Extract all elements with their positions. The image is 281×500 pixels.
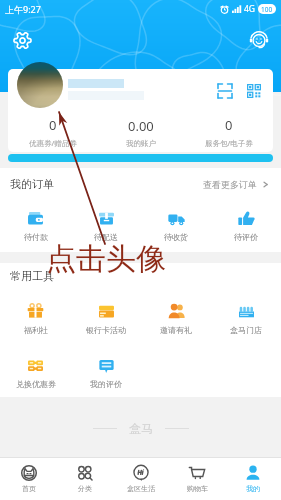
staticText: 0.00 — [128, 117, 154, 135]
staticText: 我的订单 — [10, 177, 54, 191]
staticText: 盒马门店 — [230, 325, 262, 335]
staticText: 盒区生活 — [127, 484, 155, 493]
button[interactable]: 盒马门店 — [211, 289, 281, 349]
staticText: 待配送 — [94, 232, 118, 242]
staticText: 待评价 — [234, 232, 258, 242]
staticText: 我的评价 — [90, 379, 122, 389]
button[interactable]: 待评价 — [211, 200, 281, 252]
staticText: 购物车 — [187, 484, 208, 493]
button[interactable]: 0 — [8, 112, 97, 152]
staticText: 我的账户 — [126, 139, 156, 148]
staticText: 0 — [49, 116, 57, 134]
button[interactable]: Settings — [8, 26, 36, 54]
button[interactable]: 0 — [185, 112, 273, 152]
staticText: 我的 — [246, 484, 260, 493]
button[interactable]: 我的 — [225, 458, 281, 500]
staticText: 优惠券/赠品券 — [29, 138, 77, 148]
staticText: 盒马 — [129, 421, 153, 436]
button[interactable]: Avatar — [17, 62, 63, 108]
staticText: 常用工具 — [10, 269, 54, 283]
staticText: 待收货 — [164, 232, 188, 242]
staticText: 100 — [261, 5, 273, 14]
button[interactable]: 待配送 — [71, 200, 141, 252]
button[interactable]: 兑换优惠券 — [0, 349, 71, 397]
button[interactable]: 0.00 — [97, 112, 185, 152]
staticText: 4G — [244, 3, 256, 15]
button[interactable]: 盒区生活 — [113, 458, 169, 500]
staticText: 待付款 — [24, 232, 48, 242]
staticText: 银行卡活动 — [86, 325, 126, 335]
button[interactable]: 购物车 — [169, 458, 225, 500]
staticText: 查看更多订单 — [203, 179, 257, 190]
staticText: 邀请有礼 — [160, 325, 192, 335]
button[interactable]: QR code — [240, 77, 268, 105]
button[interactable]: 待付款 — [0, 200, 71, 252]
staticText: 服务包/电子券 — [205, 138, 253, 148]
staticText: 点击头像 — [46, 240, 166, 278]
button[interactable]: 待收货 — [141, 200, 211, 252]
staticText: 首页 — [22, 484, 36, 493]
staticText: 兑换优惠券 — [16, 379, 56, 389]
button[interactable]: 我的订单 — [10, 168, 270, 200]
button[interactable]: 邀请有礼 — [141, 289, 211, 349]
button[interactable]: 首页 — [0, 458, 57, 500]
button[interactable]: Banner — [8, 154, 273, 162]
staticText: 上午9:27 — [5, 3, 41, 15]
staticText: 福利社 — [24, 325, 48, 335]
button[interactable]: Customer service — [245, 26, 273, 54]
button[interactable]: 银行卡活动 — [71, 289, 141, 349]
button[interactable]: 福利社 — [0, 289, 71, 349]
staticText: 分类 — [78, 484, 92, 493]
button[interactable]: Scan — [211, 77, 239, 105]
staticText: 0 — [225, 116, 233, 134]
button[interactable]: 我的评价 — [71, 349, 141, 397]
button[interactable]: 分类 — [57, 458, 113, 500]
